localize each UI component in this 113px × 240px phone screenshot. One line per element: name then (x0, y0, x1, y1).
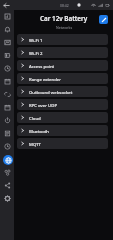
staticText: Range extender (29, 76, 62, 82)
button[interactable]: Bluetooth (17, 125, 108, 136)
button[interactable]: Automation (1, 88, 14, 101)
button[interactable]: Outbound websocket (17, 86, 108, 97)
staticText: Car 12v Battery (40, 14, 88, 23)
staticText: Wi-Fi 1 (29, 37, 43, 43)
button[interactable]: Integrations (1, 166, 14, 179)
button[interactable]: Back (0, 0, 12, 10)
button[interactable]: Settings (1, 192, 14, 205)
button[interactable]: Edit (99, 15, 108, 24)
button[interactable]: Wi-Fi 2 (17, 47, 108, 58)
staticText: Networks (56, 25, 73, 30)
staticText: Cloud (29, 115, 41, 121)
staticText: MQTT (29, 141, 41, 147)
button[interactable]: Wi-Fi 1 (17, 34, 108, 45)
button[interactable]: Share (1, 179, 14, 192)
button[interactable]: Device (1, 10, 14, 23)
button[interactable]: RPC over UDP (17, 99, 108, 110)
staticText: RPC over UDP (29, 102, 57, 108)
button[interactable]: Power (1, 114, 14, 127)
button[interactable]: MQTT (17, 138, 108, 149)
staticText: Access point (29, 63, 55, 69)
button[interactable]: Battery (1, 49, 14, 62)
button[interactable]: Access point (17, 60, 108, 71)
button[interactable]: Range extender (17, 73, 108, 84)
button[interactable]: Calendar (1, 101, 14, 114)
button[interactable]: Network (1, 153, 14, 166)
button[interactable]: Statistics (1, 36, 14, 49)
button[interactable]: Scripts (1, 127, 14, 140)
staticText: 08:42 (60, 3, 69, 8)
staticText: Wi-Fi 2 (29, 50, 43, 56)
button[interactable]: History (1, 62, 14, 75)
button[interactable]: Notifications (1, 23, 14, 36)
staticText: Bluetooth (29, 128, 49, 134)
button[interactable]: Schedules (1, 75, 14, 88)
button[interactable]: Timer (1, 140, 14, 153)
button[interactable]: Cloud (17, 112, 108, 123)
staticText: Outbound websocket (29, 89, 73, 95)
